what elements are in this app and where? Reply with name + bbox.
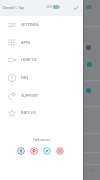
button[interactable]: SUPPORT xyxy=(0,87,83,104)
button[interactable]: APPS xyxy=(0,34,83,51)
button[interactable]: RATE US xyxy=(0,104,83,121)
staticText: APPS xyxy=(21,40,31,45)
button[interactable]: Pinterest xyxy=(30,147,38,155)
staticText: SUPPORT xyxy=(21,93,39,98)
button[interactable]: Instagram xyxy=(56,147,64,155)
button[interactable]: Facebook xyxy=(17,147,25,155)
button[interactable]: FAQ xyxy=(0,69,83,86)
staticText: Devoli's Tap xyxy=(3,5,25,10)
staticText: HOW TO xyxy=(21,57,37,62)
button[interactable]: SETTINGS xyxy=(0,16,83,33)
staticText: SETTINGS xyxy=(21,22,39,27)
staticText: Follow us xyxy=(0,137,83,142)
staticText: RATE US xyxy=(21,110,36,115)
staticText: FAQ xyxy=(21,75,29,80)
button[interactable]: HOW TO xyxy=(0,51,83,68)
button[interactable]: Twitter xyxy=(43,147,51,155)
other: Sync xyxy=(74,6,78,10)
staticText: 32% xyxy=(46,5,53,9)
